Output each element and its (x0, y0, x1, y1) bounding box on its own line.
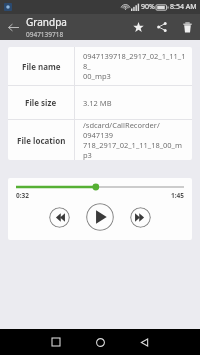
staticText: /sdcard/CallRecorder/0947139 718_2917_02… (83, 120, 186, 160)
button[interactable]: Delete (174, 14, 200, 40)
button[interactable]: Home (78, 329, 122, 355)
staticText: 3.12 MB (83, 98, 112, 108)
staticText: 0947139718 (26, 30, 64, 39)
staticText: File name (22, 61, 61, 72)
button[interactable]: Rewind (49, 207, 70, 228)
button[interactable]: Recent apps (34, 329, 78, 355)
staticText: File location (17, 135, 66, 146)
button[interactable]: Favorite (126, 15, 150, 39)
staticText: File size (25, 97, 57, 108)
staticText: 8:54 AM (170, 2, 197, 12)
button[interactable]: Back (0, 14, 26, 40)
button[interactable]: Forward (130, 207, 151, 228)
button[interactable]: Back (122, 329, 166, 355)
staticText: 90% (141, 2, 155, 12)
button[interactable]: Seek bar (16, 184, 184, 190)
button[interactable]: Play (86, 203, 114, 231)
button[interactable]: Share (150, 15, 174, 39)
staticText: 0:32 (16, 191, 29, 200)
staticText: 1:45 (171, 191, 184, 200)
staticText: 0947139718_2917_02_1_11_18_ 00_mp3 (83, 51, 186, 81)
staticText: Grandpa (26, 15, 67, 29)
